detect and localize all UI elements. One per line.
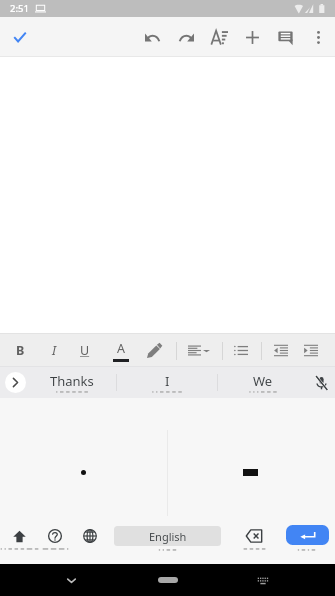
button[interactable]: Dash [168, 398, 335, 515]
button[interactable]: Done [3, 20, 37, 54]
button[interactable]: Expand toolbar [5, 372, 26, 393]
button[interactable]: Home [158, 577, 178, 583]
button[interactable]: Backspace [234, 516, 274, 558]
button[interactable]: Language [70, 516, 110, 558]
button[interactable]: Voice input disabled [307, 369, 335, 397]
button[interactable]: Decrease indent [264, 334, 298, 367]
button[interactable]: Underline [68, 334, 102, 367]
button[interactable]: Bold [3, 334, 37, 367]
staticText: A [117, 340, 125, 357]
button[interactable]: Text color [104, 334, 138, 367]
button[interactable]: We [218, 367, 308, 398]
button[interactable]: Hide keyboard [55, 564, 87, 596]
button[interactable]: Text formatting [202, 20, 236, 54]
staticText: 2:51 [10, 2, 29, 15]
button[interactable]: Italic [37, 334, 71, 367]
button[interactable]: Help [35, 516, 75, 558]
staticText: I [52, 342, 57, 359]
staticText: U [80, 342, 90, 359]
staticText: Thanks [50, 372, 94, 390]
button[interactable]: Thanks [27, 367, 117, 398]
button[interactable]: Bullet list [224, 334, 258, 367]
button[interactable]: Enter [286, 525, 329, 545]
button[interactable]: Insert [235, 20, 269, 54]
staticText: I [165, 372, 170, 390]
staticText: B [16, 342, 25, 359]
staticText: English [149, 529, 187, 544]
button[interactable]: More options [301, 20, 335, 54]
button[interactable]: Highlight [137, 334, 171, 367]
button[interactable]: Shift [0, 516, 39, 558]
button[interactable]: Comments [268, 20, 302, 54]
button[interactable]: Increase indent [294, 334, 328, 367]
button[interactable]: Undo [135, 20, 169, 54]
button[interactable]: Redo [169, 20, 203, 54]
button[interactable]: English [114, 526, 221, 546]
button[interactable]: Align [177, 334, 211, 367]
button[interactable]: Dot [0, 398, 167, 515]
button[interactable]: Switch keyboard [247, 564, 279, 596]
staticText: We [253, 372, 273, 390]
button[interactable]: I [117, 367, 216, 398]
